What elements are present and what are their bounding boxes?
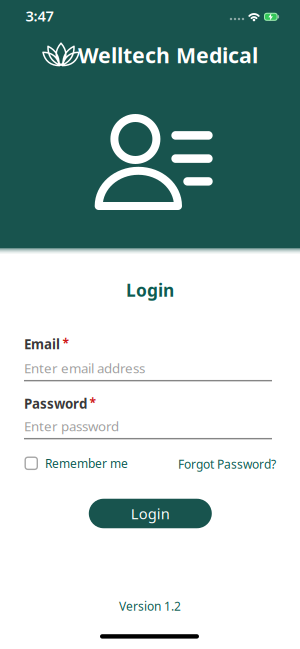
staticText: * <box>89 394 96 410</box>
staticText: * <box>62 335 69 351</box>
staticText: Version 1.2 <box>119 598 181 614</box>
button[interactable]: Remember me <box>24 455 144 471</box>
staticText: Remember me <box>45 455 128 471</box>
staticText: Welltech Medical <box>78 41 258 69</box>
button[interactable]: Enter email address <box>24 359 276 381</box>
button[interactable]: Forgot Password? <box>156 456 276 472</box>
staticText: Password <box>24 395 87 412</box>
staticText: Forgot Password? <box>178 456 276 472</box>
staticText: Enter password <box>24 417 119 435</box>
staticText: Login <box>131 504 170 523</box>
button[interactable]: Enter password <box>24 417 276 439</box>
button[interactable]: Login <box>89 499 212 528</box>
staticText: Email <box>24 335 60 353</box>
staticText: 3:47 <box>25 6 53 26</box>
staticText: Enter email address <box>24 359 145 377</box>
staticText: Login <box>126 278 174 301</box>
